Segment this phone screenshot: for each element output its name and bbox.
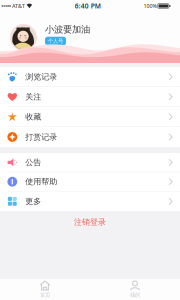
staticText: 小波要加油 <box>45 24 90 35</box>
staticText: 100% <box>143 2 156 10</box>
staticText: 注销登录 <box>74 217 106 227</box>
button[interactable]: 使用帮助 <box>0 172 180 192</box>
staticText: 首页 <box>40 292 50 298</box>
staticText: 更多 <box>25 196 41 206</box>
button[interactable]: 收藏 <box>0 107 180 127</box>
button[interactable]: 注销登录 <box>0 211 180 233</box>
button[interactable]: 关注 <box>0 87 180 107</box>
staticText: 公告 <box>25 157 41 167</box>
button[interactable]: 打赏记录 <box>0 127 180 147</box>
staticText: 关注 <box>25 92 41 102</box>
staticText: 我的 <box>130 292 140 298</box>
button[interactable]: 更多 <box>0 192 180 211</box>
staticText: 个人号 <box>48 38 63 44</box>
staticText: AT&T <box>12 2 25 10</box>
button[interactable]: 公告 <box>0 153 180 172</box>
button[interactable]: 浏览记录 <box>0 67 180 87</box>
staticText: 打赏记录 <box>25 132 57 142</box>
button[interactable]: 首页 <box>0 279 90 300</box>
button[interactable]: 我的 <box>90 279 180 300</box>
staticText: 使用帮助 <box>25 177 57 187</box>
staticText: 收藏 <box>25 112 41 122</box>
staticText: 6:40 PM <box>75 2 101 10</box>
staticText: 浏览记录 <box>25 72 57 82</box>
